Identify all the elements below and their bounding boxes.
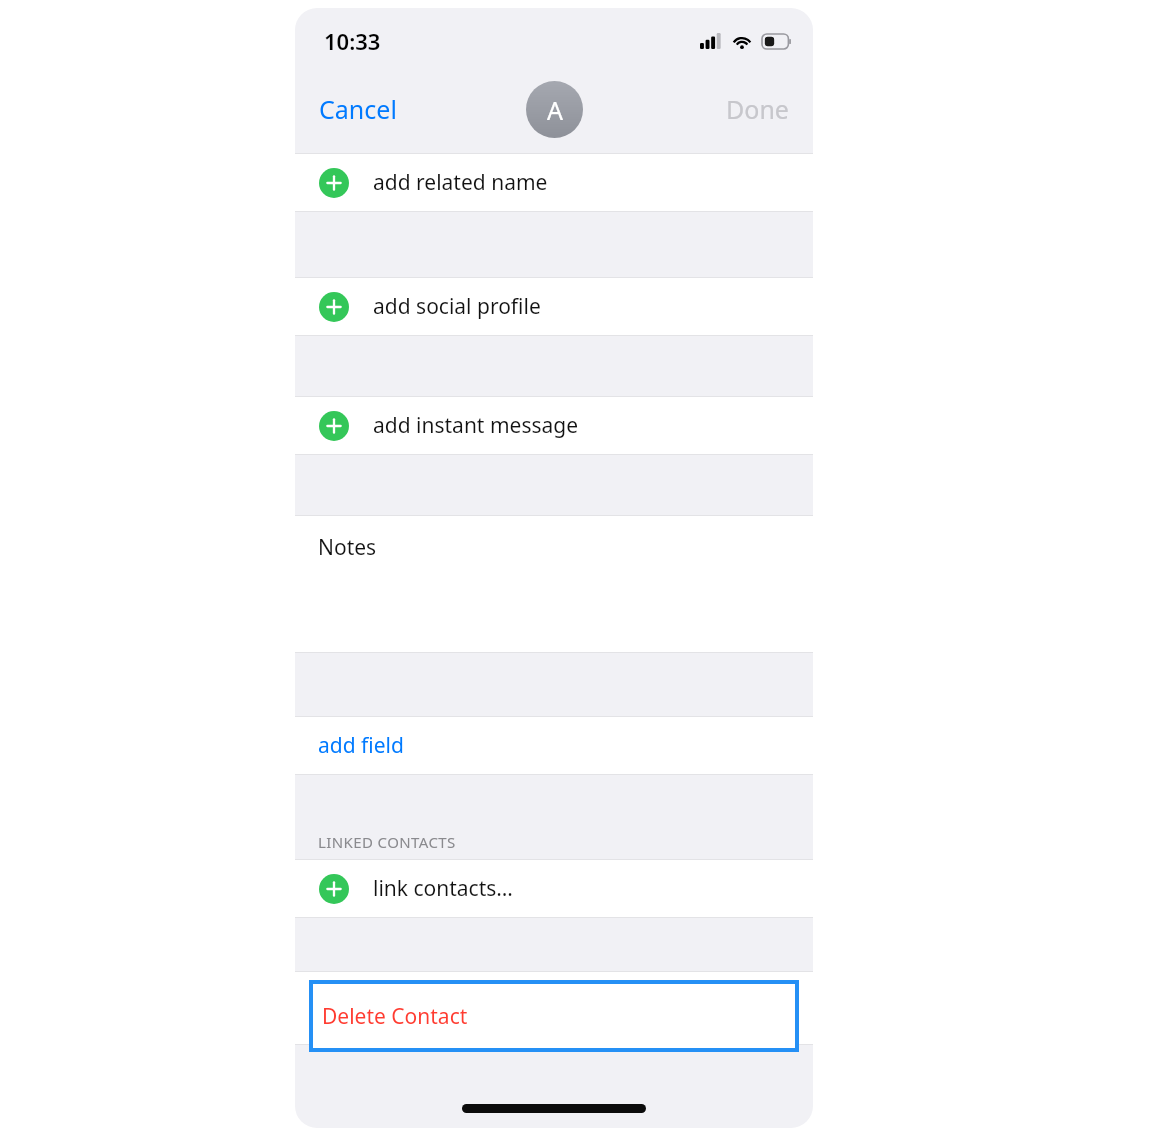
- staticText: add field: [318, 731, 404, 760]
- staticText: A: [547, 93, 563, 127]
- button[interactable]: add social profile: [295, 278, 813, 335]
- button[interactable]: add related name: [295, 154, 813, 211]
- staticText: add social profile: [373, 292, 541, 321]
- staticText: add related name: [373, 168, 548, 197]
- button[interactable]: Notes: [295, 516, 813, 652]
- staticText: Cancel: [319, 92, 397, 126]
- staticText: 10:33: [324, 26, 381, 56]
- button[interactable]: link contacts…: [295, 860, 813, 917]
- button[interactable]: Done: [712, 84, 803, 134]
- staticText: LINKED CONTACTS: [318, 832, 456, 852]
- staticText: Notes: [318, 533, 377, 562]
- button[interactable]: Cancel: [305, 84, 411, 134]
- staticText: add instant message: [373, 411, 579, 440]
- button[interactable]: add instant message: [295, 397, 813, 454]
- button[interactable]: Contact photo: [526, 81, 583, 138]
- staticText: Delete Contact: [322, 1002, 468, 1031]
- staticText: link contacts…: [373, 874, 513, 903]
- staticText: Done: [726, 92, 789, 126]
- button[interactable]: Delete Contact: [309, 980, 799, 1052]
- button[interactable]: add field: [295, 717, 813, 774]
